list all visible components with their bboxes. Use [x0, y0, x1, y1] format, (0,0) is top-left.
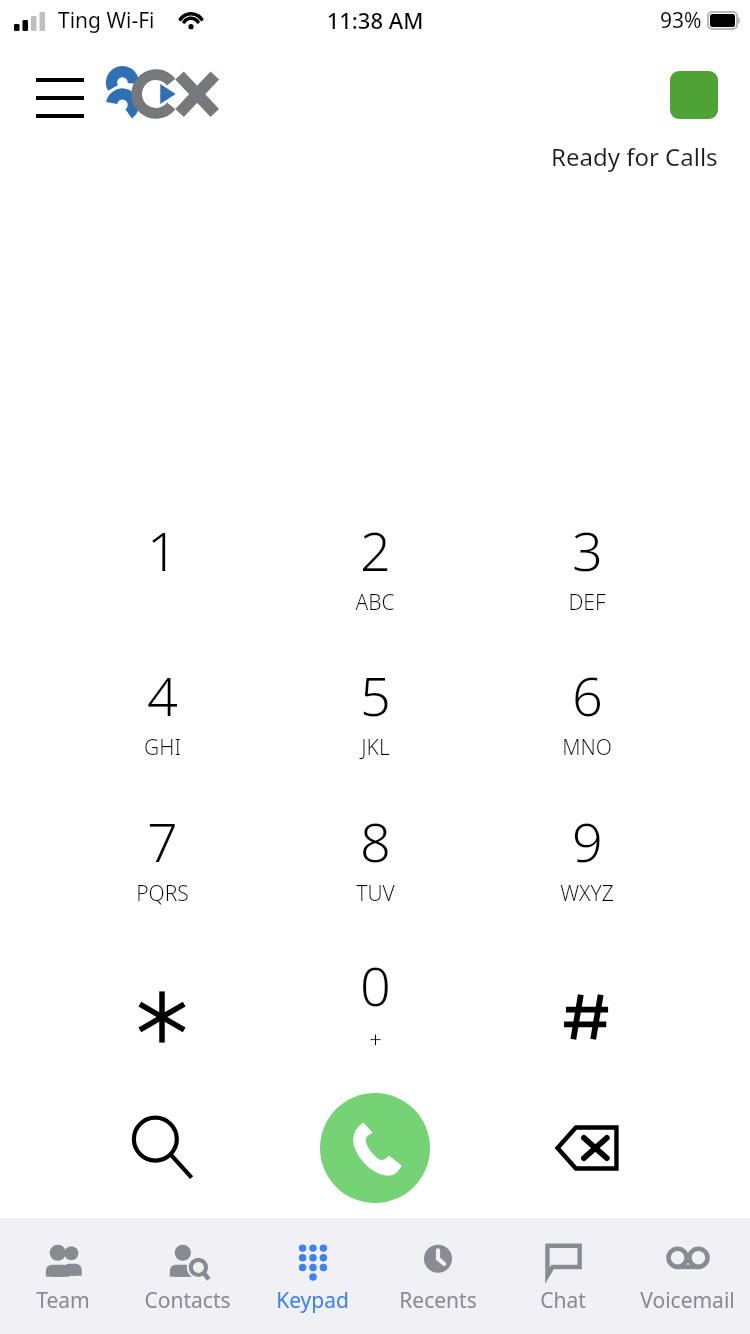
staticText: 4 — [147, 658, 178, 732]
staticText: 9 — [572, 804, 603, 878]
staticText: 5 — [360, 658, 391, 732]
staticText: 93% — [660, 6, 702, 35]
button[interactable]: Presence status — [670, 71, 718, 119]
staticText: Ready for Calls — [551, 140, 718, 173]
staticText: 2 — [360, 513, 391, 587]
button[interactable]: Keypad — [250, 1218, 375, 1334]
staticText: 3 — [572, 513, 603, 587]
button[interactable]: Star — [114, 969, 210, 1065]
button[interactable]: Pound — [539, 969, 635, 1065]
staticText: Ting Wi-Fi — [58, 6, 155, 35]
button[interactable]: Backspace — [532, 1093, 642, 1203]
staticText: TUV — [356, 879, 395, 908]
staticText: Voicemail — [640, 1286, 735, 1315]
button[interactable]: Voicemail — [625, 1218, 750, 1334]
button[interactable]: 3 — [531, 513, 643, 617]
button[interactable]: 2 — [319, 513, 431, 617]
staticText: PQRS — [136, 879, 189, 908]
button[interactable]: Team — [0, 1218, 125, 1334]
button[interactable]: 0 — [319, 948, 431, 1052]
staticText: DEF — [568, 588, 606, 617]
staticText: JKL — [361, 733, 390, 762]
staticText: GHI — [144, 733, 181, 762]
staticText: Chat — [540, 1286, 586, 1315]
staticText: Recents — [399, 1286, 477, 1315]
button[interactable]: Contacts — [125, 1218, 250, 1334]
button[interactable]: 6 — [531, 658, 643, 762]
staticText: 8 — [360, 804, 391, 878]
button[interactable]: 5 — [319, 658, 431, 762]
button[interactable]: 7 — [106, 804, 218, 908]
button[interactable]: Chat — [500, 1218, 625, 1334]
button[interactable]: 9 — [531, 804, 643, 908]
staticText: WXYZ — [560, 879, 614, 908]
button[interactable]: Menu — [28, 66, 92, 122]
button[interactable]: 4 — [106, 658, 218, 762]
button[interactable]: Search — [107, 1093, 217, 1203]
staticText: 7 — [147, 804, 178, 878]
staticText: + — [369, 1024, 382, 1052]
button[interactable]: 1 — [106, 513, 218, 617]
staticText: Contacts — [144, 1286, 231, 1315]
button[interactable]: 8 — [319, 804, 431, 908]
staticText: 11:38 AM — [0, 5, 750, 35]
staticText: 1 — [147, 513, 178, 587]
staticText: MNO — [562, 733, 612, 762]
staticText: ABC — [355, 588, 395, 617]
button[interactable]: Recents — [375, 1218, 500, 1334]
staticText: Keypad — [276, 1286, 349, 1315]
staticText: Team — [36, 1286, 90, 1315]
staticText: 6 — [572, 658, 603, 732]
button[interactable]: Call — [320, 1093, 430, 1203]
staticText: 0 — [360, 948, 391, 1022]
